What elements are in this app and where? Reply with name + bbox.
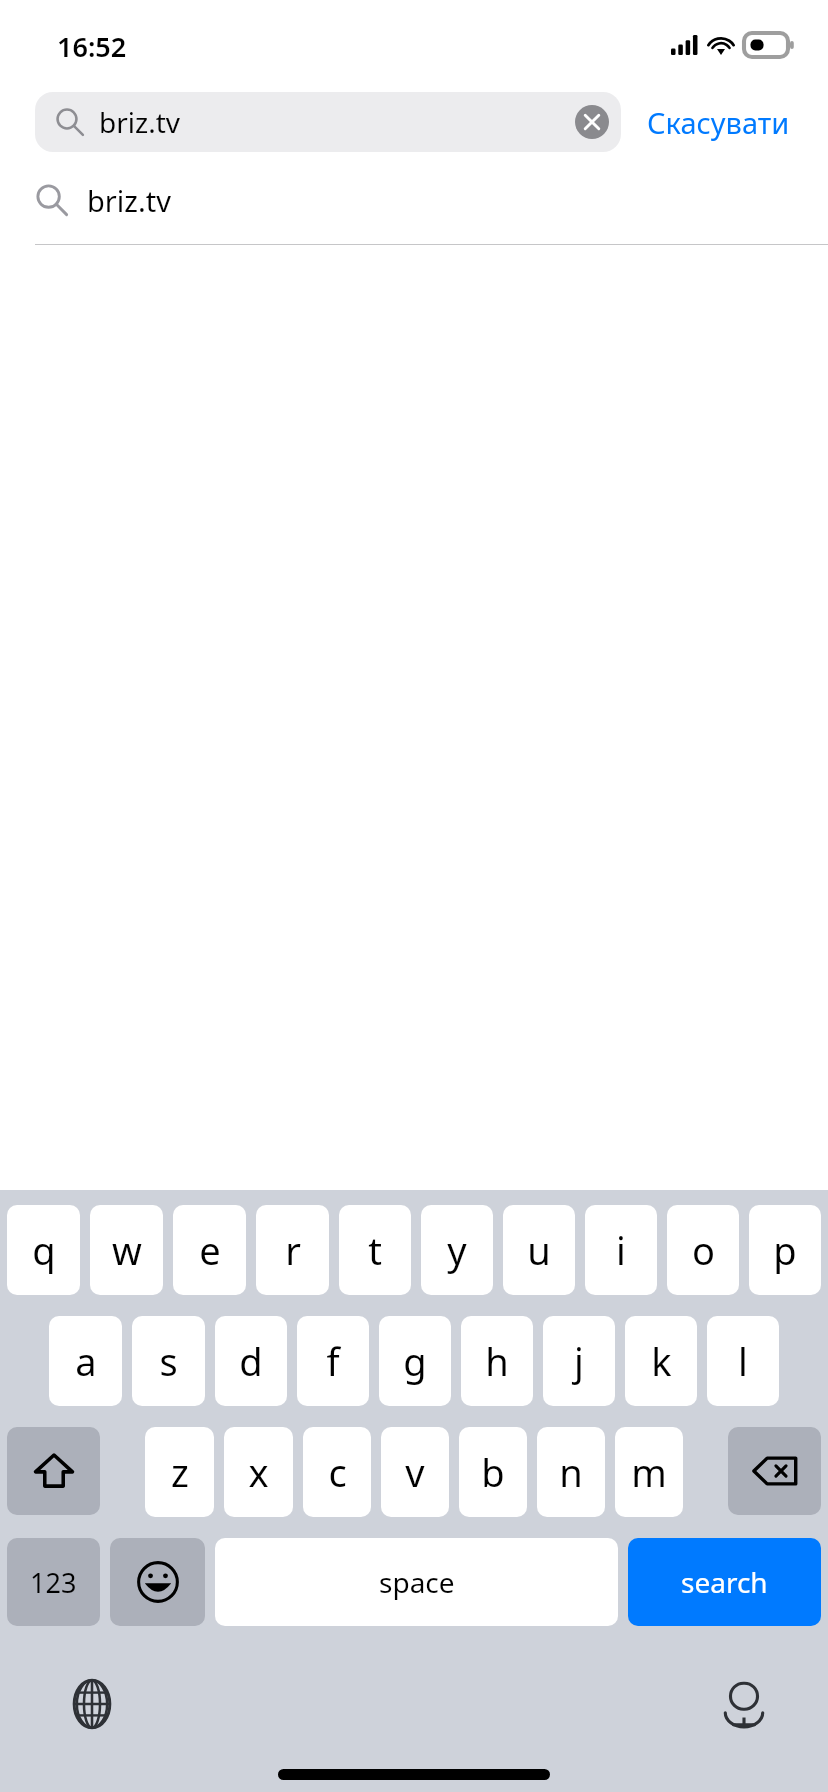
staticText: h: [485, 1335, 509, 1387]
button[interactable]: Backspace: [728, 1427, 821, 1515]
staticText: f: [326, 1335, 340, 1387]
button[interactable]: p: [749, 1205, 821, 1295]
button[interactable]: b: [459, 1427, 527, 1517]
button[interactable]: briz.tv: [35, 92, 621, 152]
button[interactable]: Shift: [7, 1427, 100, 1515]
staticText: t: [368, 1224, 382, 1276]
staticText: 16:52: [57, 28, 127, 65]
staticText: m: [631, 1446, 667, 1498]
staticText: i: [616, 1224, 626, 1276]
button[interactable]: f: [297, 1316, 369, 1406]
staticText: j: [574, 1335, 584, 1387]
button[interactable]: y: [421, 1205, 493, 1295]
staticText: u: [527, 1224, 551, 1276]
staticText: p: [773, 1224, 797, 1276]
button[interactable]: v: [381, 1427, 449, 1517]
staticText: l: [738, 1335, 748, 1387]
button[interactable]: q: [7, 1205, 80, 1295]
button[interactable]: space: [215, 1538, 618, 1626]
button[interactable]: l: [707, 1316, 779, 1406]
staticText: search: [681, 1563, 768, 1601]
button[interactable]: a: [49, 1316, 122, 1406]
staticText: Скасувати: [647, 103, 790, 142]
button[interactable]: search: [628, 1538, 821, 1626]
staticText: d: [239, 1335, 263, 1387]
staticText: a: [75, 1335, 97, 1387]
button[interactable]: z: [145, 1427, 214, 1517]
staticText: briz.tv: [87, 181, 171, 220]
button[interactable]: Скасувати: [647, 103, 790, 142]
button[interactable]: h: [461, 1316, 533, 1406]
button[interactable]: r: [256, 1205, 329, 1295]
staticText: g: [403, 1335, 427, 1387]
staticText: r: [285, 1224, 301, 1276]
staticText: s: [159, 1335, 178, 1387]
staticText: z: [171, 1446, 189, 1498]
button[interactable]: 123: [7, 1538, 100, 1626]
button[interactable]: k: [625, 1316, 697, 1406]
button[interactable]: t: [339, 1205, 411, 1295]
staticText: n: [559, 1446, 583, 1498]
button[interactable]: u: [503, 1205, 575, 1295]
button[interactable]: j: [543, 1316, 615, 1406]
button[interactable]: w: [90, 1205, 163, 1295]
staticText: e: [199, 1224, 221, 1276]
button[interactable]: o: [667, 1205, 739, 1295]
button[interactable]: g: [379, 1316, 451, 1406]
staticText: x: [248, 1446, 269, 1498]
staticText: w: [112, 1224, 142, 1276]
button[interactable]: x: [224, 1427, 293, 1517]
staticText: space: [379, 1563, 455, 1601]
button[interactable]: d: [215, 1316, 287, 1406]
staticText: k: [651, 1335, 672, 1387]
staticText: c: [328, 1446, 347, 1498]
button[interactable]: Switch keyboard language: [50, 1662, 134, 1746]
staticText: b: [481, 1446, 505, 1498]
button[interactable]: i: [585, 1205, 657, 1295]
button[interactable]: c: [303, 1427, 371, 1517]
button[interactable]: briz.tv: [0, 156, 828, 244]
staticText: y: [447, 1224, 467, 1276]
staticText: o: [692, 1224, 715, 1276]
staticText: briz.tv: [99, 103, 575, 141]
button[interactable]: n: [537, 1427, 605, 1517]
button[interactable]: s: [132, 1316, 205, 1406]
button[interactable]: Clear text: [575, 105, 609, 139]
staticText: 123: [30, 1564, 77, 1601]
button[interactable]: Emoji: [110, 1538, 205, 1626]
staticText: q: [32, 1224, 56, 1276]
staticText: v: [405, 1446, 425, 1498]
button[interactable]: e: [173, 1205, 246, 1295]
button[interactable]: Dictation: [702, 1662, 786, 1746]
button[interactable]: m: [615, 1427, 683, 1517]
